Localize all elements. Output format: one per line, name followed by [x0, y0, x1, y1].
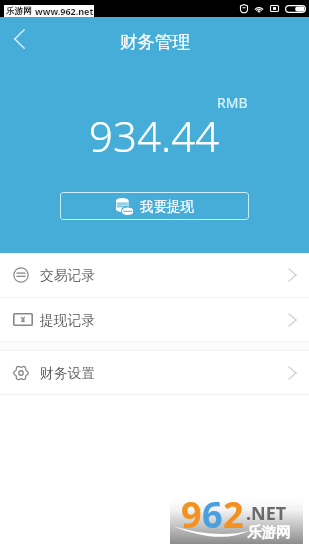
staticText: 我要提现	[140, 198, 194, 215]
staticText: www.962.net	[35, 5, 94, 17]
staticText: .NET	[246, 501, 287, 526]
staticText: 9	[181, 490, 202, 535]
button[interactable]: 交易记录	[0, 253, 309, 297]
staticText: 6	[202, 490, 223, 535]
staticText: RMB	[217, 93, 248, 112]
button[interactable]: Back	[0, 17, 40, 65]
staticText: 财务管理	[120, 31, 190, 53]
staticText: 提现记录	[40, 312, 96, 329]
button[interactable]: 提现记录	[0, 298, 309, 341]
staticText: 2	[223, 490, 244, 535]
staticText: 乐游网	[6, 6, 32, 17]
staticText: 934.44	[89, 107, 220, 164]
button[interactable]: 财务设置	[0, 351, 309, 394]
staticText: 乐游网	[247, 523, 291, 541]
staticText: 财务设置	[40, 365, 96, 382]
staticText: 交易记录	[40, 267, 96, 284]
button[interactable]: 我要提现	[60, 192, 249, 220]
